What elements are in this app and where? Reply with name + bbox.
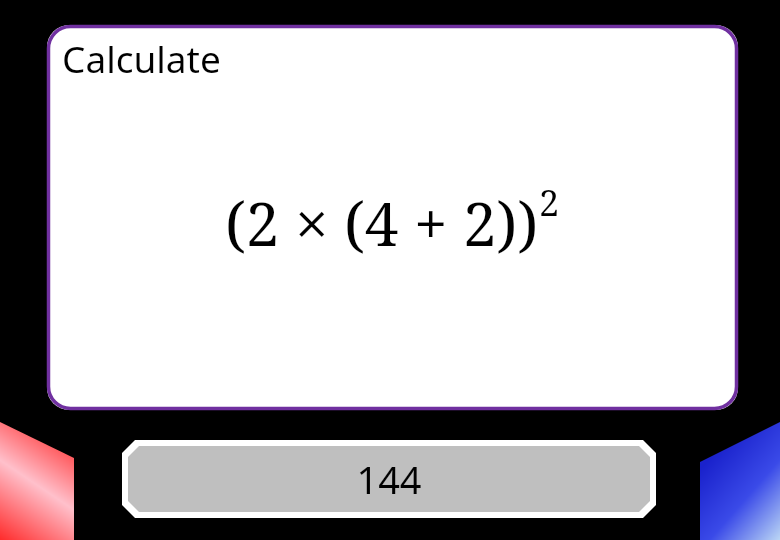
button[interactable]: Red team marker (0, 0, 780, 540)
button[interactable] (0, 0, 780, 540)
